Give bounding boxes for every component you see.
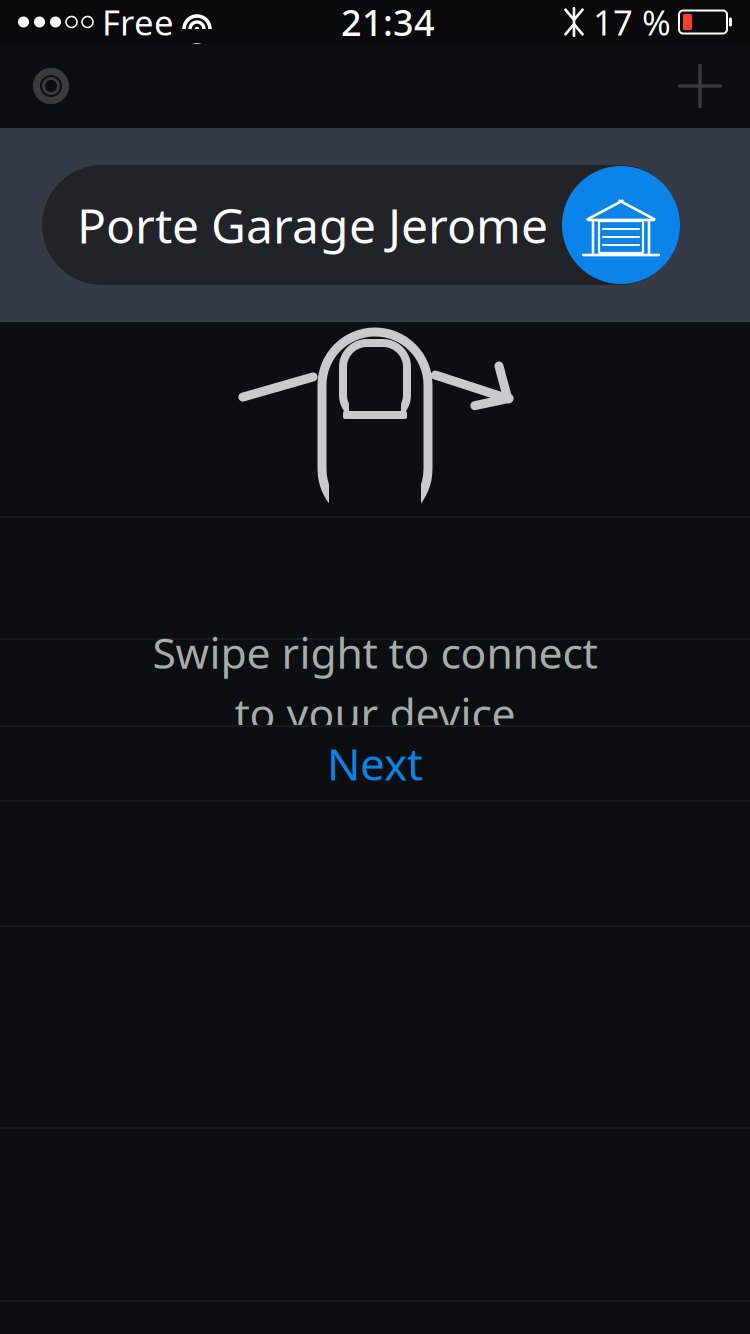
staticText: to your device bbox=[234, 684, 515, 741]
button[interactable]: Next bbox=[0, 727, 750, 800]
button[interactable]: Porte Garage Jerome bbox=[42, 165, 680, 285]
staticText: Swipe right to connect bbox=[152, 624, 597, 680]
staticText: Next bbox=[327, 734, 423, 793]
staticText: 21:34 bbox=[341, 0, 435, 46]
button[interactable]: Settings bbox=[19, 54, 83, 118]
button[interactable]: Add device bbox=[668, 54, 732, 118]
staticText: Porte Garage Jerome bbox=[77, 193, 548, 257]
staticText: Free bbox=[102, 0, 174, 45]
staticText: 17 % bbox=[593, 0, 671, 45]
